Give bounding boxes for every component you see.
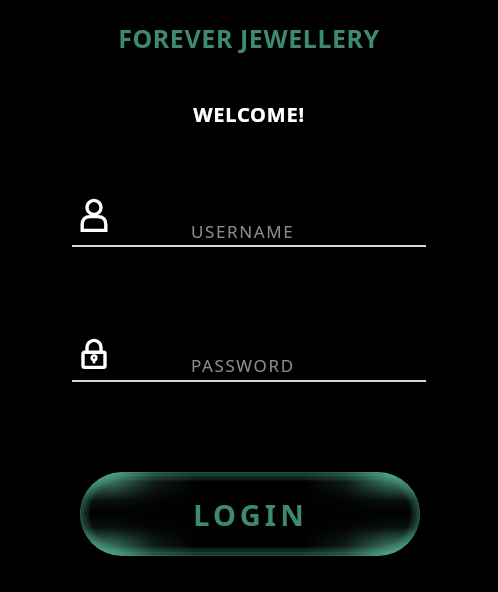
staticText: WELCOME!	[0, 101, 498, 128]
button[interactable]: LOGIN	[80, 472, 420, 556]
button[interactable]: Username	[74, 196, 114, 236]
staticText: FOREVER JEWELLERY	[0, 21, 498, 55]
button[interactable]: Password	[74, 334, 114, 374]
staticText: USERNAME	[191, 220, 295, 243]
staticText: LOGIN	[193, 495, 308, 534]
staticText: PASSWORD	[191, 354, 295, 377]
